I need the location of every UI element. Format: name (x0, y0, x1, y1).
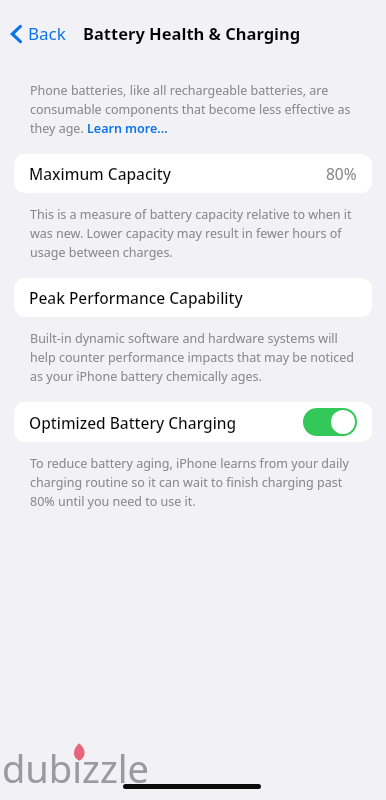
staticText: Back (28, 22, 66, 45)
staticText: Optimized Battery Charging (29, 412, 237, 433)
staticText: Phone batteries, like all rechargeable b… (30, 82, 360, 136)
button[interactable]: Optimized Battery Charging toggle (303, 408, 357, 436)
staticText: 80% (326, 163, 357, 184)
staticText: To reduce battery aging, iPhone learns f… (30, 455, 360, 509)
staticText: This is a measure of battery capacity re… (30, 206, 360, 260)
staticText: Peak Performance Capability (29, 287, 243, 308)
staticText: Battery Health & Charging (83, 22, 301, 44)
staticText: Maximum Capacity (29, 163, 171, 184)
button[interactable]: Back (6, 20, 70, 47)
staticText: Built-in dynamic software and hardware s… (30, 330, 360, 384)
staticText: dubizzle (2, 742, 149, 794)
button[interactable]: Peak Performance Capability (14, 278, 372, 317)
button[interactable]: Maximum Capacity (14, 154, 372, 193)
